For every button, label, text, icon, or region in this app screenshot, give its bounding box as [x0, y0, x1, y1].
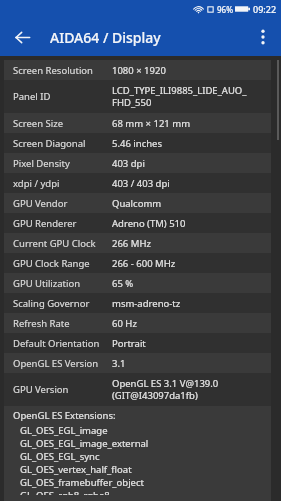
staticText: GL_OES_framebuffer_object [20, 476, 144, 489]
staticText: 60 Hz [112, 317, 137, 330]
button[interactable]: Screen Diagonal [4, 133, 271, 153]
staticText: 5.46 inches [112, 137, 162, 150]
staticText: Screen Size [13, 117, 112, 130]
staticText: GPU Vendor [13, 197, 112, 210]
button[interactable]: GPU Utilization [4, 273, 271, 293]
staticText: LCD_TYPE_ILI9885_LIDE_AUO_ FHD_550 [112, 84, 247, 109]
button[interactable]: OpenGL ES Version [4, 353, 271, 373]
staticText: xdpi / ydpi [13, 177, 112, 190]
staticText: OpenGL ES Extensions: [13, 409, 116, 422]
staticText: msm-adreno-tz [112, 297, 181, 310]
button[interactable]: Panel ID [4, 80, 271, 113]
staticText: Panel ID [13, 90, 112, 103]
staticText: GPU Renderer [13, 217, 112, 230]
button[interactable]: xdpi / ydpi [4, 173, 271, 193]
staticText: GL_OES_EGL_image_external [20, 437, 149, 450]
staticText: GPU Version [13, 383, 112, 396]
staticText: OpenGL ES 3.1 V@139.0 (GIT@I43097da1fb) [112, 377, 219, 402]
staticText: 3.1 [112, 357, 126, 370]
staticText: Pixel Density [13, 157, 112, 170]
staticText: OpenGL ES Version [13, 357, 112, 370]
button[interactable]: GPU Vendor [4, 193, 271, 213]
staticText: Screen Diagonal [13, 137, 112, 150]
staticText: Refresh Rate [13, 317, 112, 330]
staticText: 403 / 403 dpi [112, 177, 170, 190]
staticText: GL_OES_EGL_image [20, 424, 108, 437]
staticText: 266 - 600 MHz [112, 257, 176, 270]
staticText: Current GPU Clock [13, 237, 112, 250]
staticText: GPU Clock Range [13, 257, 112, 270]
staticText: 266 MHz [112, 237, 151, 250]
button[interactable]: GPU Renderer [4, 213, 271, 233]
staticText: Default Orientation [13, 337, 112, 350]
staticText: GL_OES_vertex_half_float [20, 463, 132, 476]
button[interactable]: GPU Clock Range [4, 253, 271, 273]
button[interactable]: Default Orientation [4, 333, 271, 353]
staticText: 65 % [112, 277, 134, 290]
staticText: 09:22 [253, 3, 277, 15]
button[interactable]: Back [8, 23, 36, 51]
button[interactable]: Current GPU Clock [4, 233, 271, 253]
button[interactable]: Pixel Density [4, 153, 271, 173]
staticText: AIDA64 / Display [50, 28, 161, 47]
button[interactable]: Scaling Governor [4, 293, 271, 313]
staticText: 68 mm × 121 mm [112, 117, 191, 130]
staticText: 403 dpi [112, 157, 145, 170]
button[interactable]: Refresh Rate [4, 313, 271, 333]
button[interactable]: GPU Version [4, 373, 271, 406]
staticText: GL_OES_rgb8_rgba8 [20, 489, 110, 495]
staticText: GPU Utilization [13, 277, 112, 290]
button[interactable]: Screen Resolution [4, 60, 271, 80]
button[interactable]: More options [248, 22, 278, 52]
button[interactable]: Screen Size [4, 113, 271, 133]
staticText: Portrait [112, 337, 146, 350]
staticText: GL_OES_EGL_sync [20, 450, 100, 463]
staticText: Screen Resolution [13, 64, 112, 77]
staticText: Adreno (TM) 510 [112, 217, 186, 230]
staticText: 1080 × 1920 [112, 64, 166, 77]
staticText: Scaling Governor [13, 297, 112, 310]
staticText: 96% [217, 4, 233, 15]
staticText: Qualcomm [112, 197, 162, 210]
